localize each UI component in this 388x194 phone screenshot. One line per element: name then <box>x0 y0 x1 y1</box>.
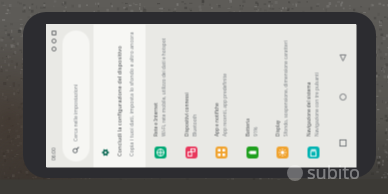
staticText: Bluetooth <box>191 113 198 136</box>
staticText: Batteria <box>244 118 250 136</box>
staticText: Dispositivi connessi <box>183 92 189 136</box>
button[interactable]: Navigazione del sistema <box>297 24 328 167</box>
staticText: Rete e Internet <box>152 102 158 136</box>
staticText: Display <box>274 119 280 136</box>
staticText: Wi-Fi, rete mobile, utilizzo dei dati e … <box>160 37 167 136</box>
staticText: Navigazione del sistema <box>305 81 311 136</box>
button[interactable]: Display <box>266 24 297 167</box>
staticText: Cerca nelle impostazioni <box>72 83 79 141</box>
button[interactable]: Back <box>332 48 352 68</box>
button[interactable]: Cerca nelle impostazioni <box>62 30 89 161</box>
button[interactable]: Home <box>332 87 352 107</box>
staticText: Concludi la configurazione del dispositi… <box>115 45 123 156</box>
button[interactable]: App e notifiche <box>205 24 236 167</box>
staticText: subito <box>307 160 360 185</box>
button[interactable]: Batteria <box>236 24 267 167</box>
button[interactable]: Recent apps <box>332 133 352 153</box>
staticText: Copia i tuoi dati, imposta lo sfondo e a… <box>127 31 134 156</box>
staticText: Sfondo, sospensione, dimensione caratter… <box>282 40 289 136</box>
button[interactable]: Rete e Internet <box>144 24 175 167</box>
staticText: 91% <box>252 126 259 136</box>
button[interactable]: Dispositivi connessi <box>175 24 206 167</box>
staticText: 06:00 <box>50 147 57 160</box>
staticText: Navigazione con tre pulsanti <box>313 71 320 136</box>
staticText: App e notifiche <box>213 102 219 136</box>
staticText: App recenti, app predefinite <box>221 73 228 136</box>
button[interactable]: Concludi la configurazione del dispositi… <box>93 24 145 167</box>
